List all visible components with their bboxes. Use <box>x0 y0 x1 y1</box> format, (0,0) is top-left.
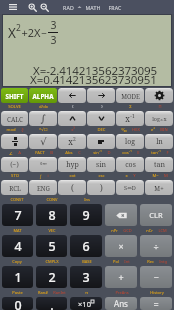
staticText: Int <box>124 259 130 264</box>
staticText: hyp <box>66 160 79 170</box>
staticText: RanInt <box>53 290 66 295</box>
button[interactable]: . <box>36 297 67 310</box>
staticText: sin <box>96 160 106 170</box>
button[interactable]: tan <box>145 157 173 172</box>
button[interactable]: 8 <box>36 204 67 226</box>
button[interactable]: Right <box>87 88 115 103</box>
staticText: 3 <box>82 269 90 286</box>
staticText: Ans <box>114 298 128 309</box>
button[interactable]: Zoom in <box>26 0 38 14</box>
staticText: 5 <box>48 238 56 255</box>
staticText: VEC <box>48 228 56 233</box>
staticText: MODE <box>121 92 140 100</box>
staticText: -1 <box>130 113 135 120</box>
staticText: Intg <box>159 259 167 264</box>
staticText: X=0.4142135623730951 <box>30 72 157 86</box>
staticText: M− <box>152 173 159 179</box>
button[interactable]: log <box>145 111 173 126</box>
button[interactable]: FRAC <box>108 4 122 11</box>
button[interactable]: RAD <box>63 4 74 11</box>
button[interactable]: = <box>140 297 172 310</box>
button[interactable]: ALPHA <box>29 88 57 103</box>
button[interactable]: CALC <box>1 111 28 126</box>
staticText: tan⁻¹ <box>151 150 161 156</box>
staticText: nPr <box>111 228 118 233</box>
button[interactable]: 9 <box>70 204 102 226</box>
staticText: log <box>125 137 135 147</box>
button[interactable]: hyp <box>58 157 86 172</box>
button[interactable]: 5 <box>36 235 67 257</box>
button[interactable]: MODE <box>116 88 144 103</box>
button[interactable]: − <box>140 266 172 288</box>
button[interactable]: S⇔D <box>116 180 144 195</box>
staticText: CMPLX <box>45 259 59 264</box>
button[interactable]: ( <box>58 180 86 195</box>
button[interactable]: x <box>116 111 144 126</box>
button[interactable]: Up <box>58 111 86 126</box>
button[interactable]: log <box>116 134 144 149</box>
staticText: ∫ <box>40 113 46 125</box>
button[interactable]: Angle unit <box>77 5 82 9</box>
button[interactable]: ENG <box>29 180 57 195</box>
button[interactable]: (−) <box>1 157 28 172</box>
staticText: BIN <box>160 127 168 133</box>
staticText: HEX <box>132 127 140 133</box>
staticText: FACT <box>35 150 45 156</box>
staticText: ( <box>71 182 74 193</box>
button[interactable]: ) <box>87 180 115 195</box>
staticText: ( <box>72 104 74 110</box>
button[interactable]: √ <box>29 134 57 149</box>
staticText: Ran# <box>38 290 48 295</box>
button[interactable]: ×10 <box>70 297 102 310</box>
staticText: E <box>137 150 140 156</box>
button[interactable]: 6 <box>70 235 102 257</box>
button[interactable]: ∫ <box>29 111 57 126</box>
button[interactable]: Left <box>58 88 86 103</box>
staticText: 9 <box>82 207 90 224</box>
button[interactable]: ln <box>145 134 173 149</box>
button[interactable]: x <box>58 134 86 149</box>
button[interactable] <box>1 134 28 149</box>
button[interactable]: 7 <box>2 204 33 226</box>
button[interactable]: CLR <box>140 204 172 226</box>
staticText: ∠ <box>9 151 13 156</box>
staticText: a <box>160 117 163 122</box>
button[interactable]: 4 <box>2 235 33 257</box>
button[interactable]: ÷ <box>140 235 172 257</box>
button[interactable]: 0 <box>2 297 33 310</box>
button[interactable]: Down <box>87 111 115 126</box>
button[interactable]: °’” <box>29 157 57 172</box>
staticText: ×10 <box>78 299 91 309</box>
button[interactable]: 1 <box>2 266 33 288</box>
staticText: Abs <box>65 150 73 156</box>
staticText: x <box>125 173 128 179</box>
staticText: + <box>118 271 124 283</box>
button[interactable]: M+ <box>145 180 173 195</box>
staticText: × <box>118 240 124 252</box>
button[interactable]: cos <box>116 157 144 172</box>
staticText: SHIFT <box>5 92 24 100</box>
button[interactable]: sin <box>87 157 115 172</box>
button[interactable]: SHIFT <box>1 88 28 103</box>
button[interactable]: RCL <box>1 180 28 195</box>
button[interactable]: Zoom out <box>38 0 50 14</box>
button[interactable]: Delete <box>105 204 137 226</box>
button[interactable]: Settings <box>145 88 173 103</box>
staticText: ∫ <box>39 174 42 179</box>
button[interactable] <box>87 134 115 149</box>
staticText: = <box>153 298 159 310</box>
button[interactable]: × <box>105 235 137 257</box>
staticText: +2X <box>21 25 41 40</box>
button[interactable]: + <box>105 266 137 288</box>
button[interactable]: 2 <box>36 266 67 288</box>
staticText: x³ <box>71 127 75 133</box>
staticText: Ins <box>84 197 90 202</box>
staticText: 0 <box>14 297 22 310</box>
staticText: STO <box>11 173 19 179</box>
button[interactable]: MATH <box>85 4 101 11</box>
button[interactable]: Ans <box>105 297 137 310</box>
staticText: tan <box>154 160 165 170</box>
button[interactable]: Menu <box>0 0 26 14</box>
button[interactable]: 3 <box>70 266 102 288</box>
staticText: F <box>166 150 169 156</box>
